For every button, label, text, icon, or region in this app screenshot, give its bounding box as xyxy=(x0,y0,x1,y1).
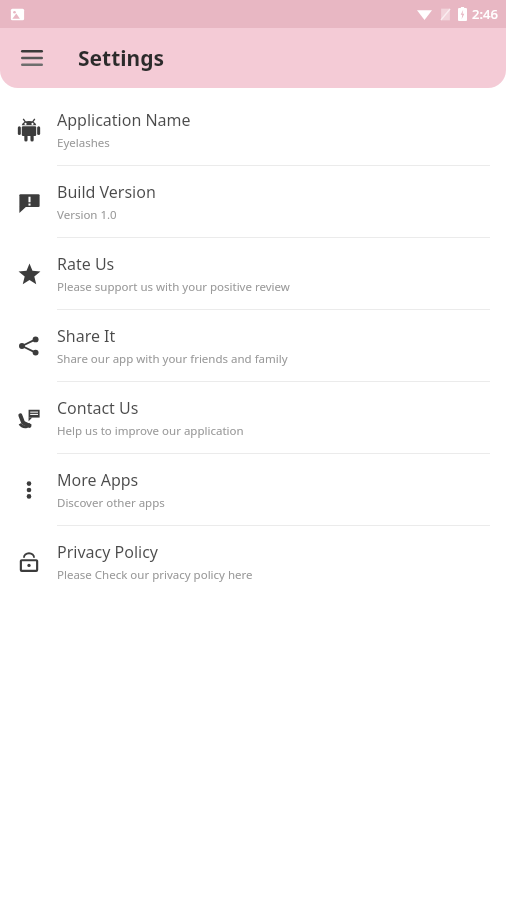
staticText: Version 1.0 xyxy=(57,207,117,223)
staticText: Please support us with your positive rev… xyxy=(57,279,290,295)
staticText: Build Version xyxy=(57,181,156,203)
staticText: Privacy Policy xyxy=(57,541,158,563)
staticText: 2:46 xyxy=(472,5,498,23)
staticText: Help us to improve our application xyxy=(57,423,244,439)
button[interactable]: Share It xyxy=(0,310,506,381)
staticText: Please Check our privacy policy here xyxy=(57,567,253,583)
staticText: Contact Us xyxy=(57,397,139,419)
staticText: Rate Us xyxy=(57,253,115,275)
staticText: Settings xyxy=(78,44,165,73)
button[interactable]: Open navigation menu xyxy=(8,34,56,82)
staticText: Share our app with your friends and fami… xyxy=(57,351,288,367)
staticText: More Apps xyxy=(57,469,139,491)
button[interactable]: More Apps xyxy=(0,454,506,525)
staticText: Application Name xyxy=(57,109,191,131)
staticText: Share It xyxy=(57,325,116,347)
staticText: Eyelashes xyxy=(57,135,110,151)
button[interactable]: Privacy Policy xyxy=(0,526,506,597)
button[interactable]: Application Name xyxy=(0,94,506,165)
staticText: Discover other apps xyxy=(57,495,165,511)
button[interactable]: Rate Us xyxy=(0,238,506,309)
button[interactable]: Contact Us xyxy=(0,382,506,453)
button[interactable]: Build Version xyxy=(0,166,506,237)
